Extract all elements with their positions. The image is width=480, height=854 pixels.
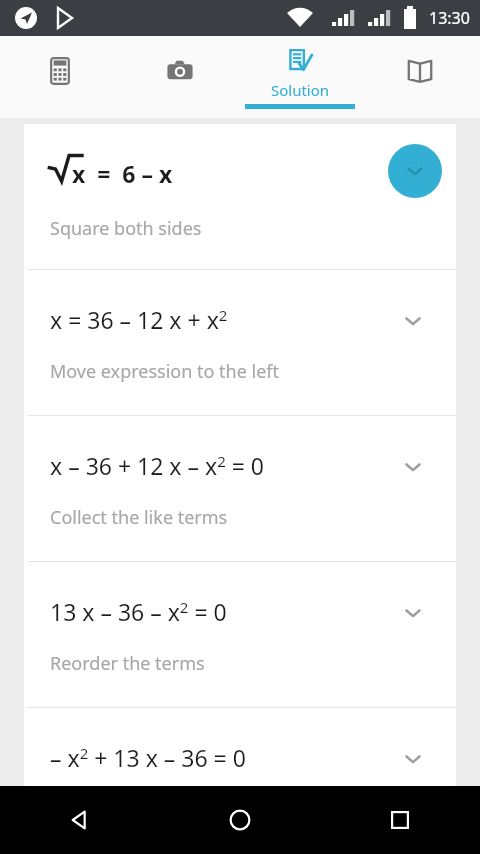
staticText: Solution [271, 80, 330, 100]
button[interactable]: Expand step [396, 304, 430, 338]
button[interactable]: Expand step [396, 742, 430, 776]
button[interactable]: Book [360, 36, 480, 118]
staticText: – x2 + 13 x – 36 = 0 [50, 742, 246, 773]
staticText: x – 36 + 12 x – x2 = 0 [50, 450, 264, 481]
button[interactable]: Expand step [396, 450, 430, 484]
button[interactable]: 13 x – 36 – x2 = 0 [24, 562, 456, 707]
button[interactable]: Home [160, 786, 320, 854]
button[interactable]: Collapse step [388, 144, 442, 198]
staticText: x = 6 – x [72, 158, 173, 189]
button[interactable]: Solution [240, 36, 360, 118]
staticText: Collect the like terms [50, 505, 228, 530]
staticText: Move expression to the left [50, 359, 280, 384]
button[interactable]: Back [0, 786, 160, 854]
staticText: Reorder the terms [50, 651, 205, 676]
button[interactable]: x = 36 – 12 x + x2 [24, 270, 456, 415]
button[interactable]: Calculator [0, 36, 120, 118]
button[interactable]: x = 6 – x [24, 124, 456, 269]
button[interactable]: x – 36 + 12 x – x2 = 0 [24, 416, 456, 561]
button[interactable]: – x2 + 13 x – 36 = 0 [24, 708, 456, 786]
button[interactable]: Recents [320, 786, 480, 854]
staticText: 13 x – 36 – x2 = 0 [50, 596, 227, 627]
button[interactable]: Camera [120, 36, 240, 118]
staticText: Square both sides [50, 216, 202, 241]
staticText: x = 36 – 12 x + x2 [50, 304, 228, 335]
button[interactable]: Expand step [396, 596, 430, 630]
staticText: 13:30 [429, 7, 470, 29]
